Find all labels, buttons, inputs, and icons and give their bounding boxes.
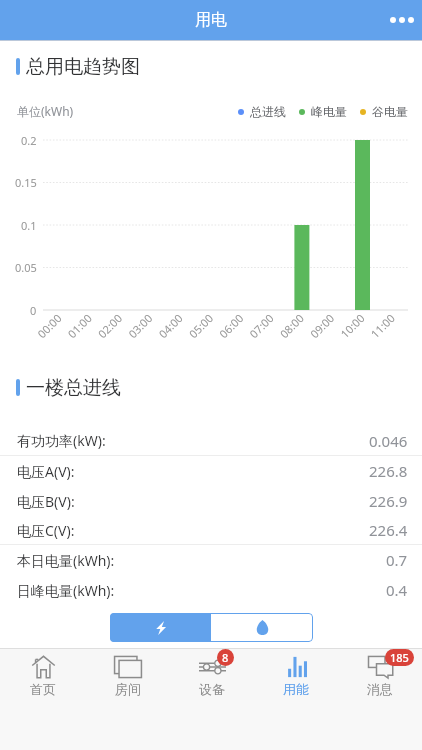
button[interactable]: 8 [170, 649, 254, 700]
staticText: 电压C(V): [17, 521, 75, 540]
button[interactable]: 电压C(V): [0, 516, 422, 545]
staticText: 有功功率(kW): [17, 431, 106, 450]
button[interactable]: 房间 [85, 649, 170, 700]
staticText: 首页 [30, 681, 56, 697]
staticText: 电压B(V): [17, 492, 75, 511]
staticText: 226.4 [369, 520, 408, 540]
staticText: 226.8 [369, 461, 408, 481]
staticText: 一楼总进线 [26, 376, 121, 398]
button[interactable]: 185 [338, 649, 422, 700]
staticText: 日峰电量(kWh): [17, 581, 115, 600]
staticText: 用能 [283, 681, 309, 697]
staticText: 设备 [199, 681, 225, 697]
staticText: 电压A(V): [17, 462, 75, 481]
staticText: 0.4 [386, 580, 408, 600]
button[interactable]: 日峰电量(kWh): [0, 575, 422, 605]
button[interactable]: 电压B(V): [0, 486, 422, 516]
staticText: 单位(kWh) [17, 103, 74, 119]
staticText: 8 [222, 650, 229, 665]
staticText: 总用电趋势图 [26, 55, 140, 77]
button[interactable]: Water [211, 613, 313, 642]
staticText: 0.7 [386, 550, 408, 570]
staticText: 总进线 [250, 104, 286, 119]
staticText: 用电 [195, 10, 227, 30]
staticText: 房间 [115, 681, 141, 697]
button[interactable]: 首页 [0, 649, 85, 700]
button[interactable]: 电压A(V): [0, 456, 422, 486]
button[interactable]: 本日电量(kWh): [0, 545, 422, 575]
staticText: 0.046 [369, 431, 408, 451]
button[interactable]: Electricity [110, 613, 211, 642]
staticText: 峰电量 [311, 104, 347, 119]
button[interactable]: 用能 [254, 649, 338, 700]
staticText: 本日电量(kWh): [17, 551, 115, 570]
staticText: 226.9 [369, 491, 408, 511]
button[interactable]: More options [382, 0, 422, 40]
staticText: 185 [390, 650, 409, 665]
button[interactable]: 有功功率(kW): [0, 426, 422, 456]
staticText: 谷电量 [372, 104, 408, 119]
staticText: 消息 [367, 681, 393, 697]
